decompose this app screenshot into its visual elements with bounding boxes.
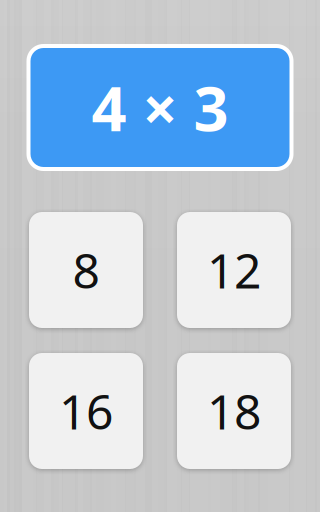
- button[interactable]: 12: [177, 212, 291, 328]
- staticText: 12: [207, 238, 261, 302]
- staticText: 8: [72, 238, 99, 302]
- button[interactable]: 16: [29, 353, 143, 469]
- staticText: 18: [207, 379, 261, 443]
- button[interactable]: 8: [29, 212, 143, 328]
- staticText: 4 × 3: [91, 67, 228, 148]
- staticText: 16: [59, 379, 113, 443]
- button[interactable]: 18: [177, 353, 291, 469]
